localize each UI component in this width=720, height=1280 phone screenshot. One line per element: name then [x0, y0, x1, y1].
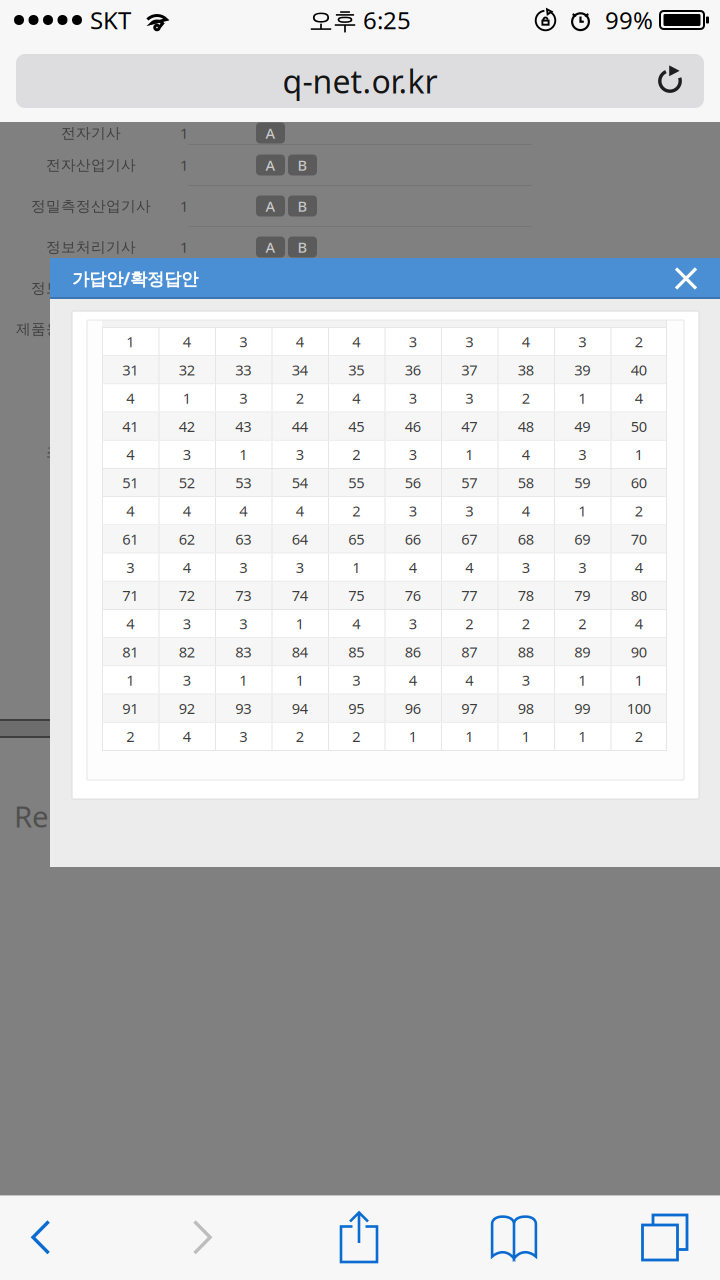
staticText: 1 — [180, 319, 188, 339]
staticText: 3 — [522, 670, 530, 690]
staticText: 2 — [352, 445, 360, 464]
staticText: 32 — [179, 360, 195, 380]
staticText: 2 — [578, 614, 586, 633]
staticText: 2 — [352, 501, 360, 521]
staticText: 95 — [348, 698, 364, 718]
staticText: 4 — [522, 501, 530, 521]
staticText: 2 — [352, 727, 360, 746]
staticText: 93 — [235, 698, 251, 718]
staticText: 40 — [631, 360, 647, 380]
staticText: 42 — [179, 416, 195, 436]
staticText: 4 — [126, 388, 134, 408]
staticText: 4 — [126, 445, 134, 464]
button[interactable]: Back — [0, 1195, 82, 1280]
staticText: 3 — [409, 445, 417, 464]
button[interactable]: Forward — [82, 1195, 323, 1280]
staticText: 4 — [635, 614, 643, 633]
staticText: 72 — [179, 586, 195, 605]
staticText: A — [265, 196, 275, 216]
staticText: 48 — [518, 416, 534, 436]
staticText: 1 — [180, 237, 188, 257]
staticText: 3 — [578, 445, 586, 464]
staticText: 정밀측정산업기사 — [31, 197, 151, 215]
staticText: 3 — [296, 557, 304, 577]
staticText: 34 — [292, 360, 308, 380]
staticText: 79 — [574, 586, 590, 605]
staticText: 47 — [461, 416, 477, 436]
staticText: 1 — [239, 670, 247, 690]
staticText: 1 — [183, 388, 191, 408]
staticText: 90 — [631, 642, 647, 662]
staticText: 4 — [352, 332, 360, 351]
staticText: 67 — [461, 529, 477, 549]
staticText: 3 — [409, 332, 417, 351]
staticText: 52 — [179, 473, 195, 492]
staticText: 3 — [183, 614, 191, 633]
staticText: 55 — [348, 473, 364, 492]
staticText: 4 — [409, 670, 417, 690]
staticText: SKT — [90, 4, 131, 36]
staticText: 1 — [522, 727, 530, 746]
staticText: 3 — [465, 332, 473, 351]
button[interactable]: Bookmarks — [395, 1195, 633, 1280]
staticText: 1 — [180, 278, 188, 298]
staticText: A — [265, 278, 275, 298]
staticText: B — [297, 237, 307, 257]
staticText: 73 — [235, 586, 251, 605]
staticText: 80 — [631, 586, 647, 605]
staticText: 98 — [518, 698, 534, 718]
staticText: 1 — [180, 123, 188, 143]
button[interactable]: Share — [323, 1195, 395, 1280]
staticText: 1 — [578, 670, 586, 690]
staticText: 3 — [296, 445, 304, 464]
staticText: 94 — [292, 698, 308, 718]
staticText: 87 — [461, 642, 477, 662]
staticText: 제품응용모델링기능사 — [16, 320, 166, 338]
staticText: 4 — [409, 557, 417, 577]
staticText: 74 — [292, 586, 308, 605]
staticText: 38 — [518, 360, 534, 380]
staticText: B — [297, 155, 307, 175]
staticText: 1 — [126, 332, 134, 351]
staticText: 2 — [522, 614, 530, 633]
staticText: 1 — [239, 445, 247, 464]
staticText: 4 — [183, 332, 191, 351]
staticText: Resources — [14, 796, 156, 835]
staticText: A — [265, 237, 275, 257]
staticText: 62 — [179, 529, 195, 549]
staticText: 91 — [122, 698, 138, 718]
staticText: 2 — [465, 614, 473, 633]
staticText: 1 — [180, 155, 188, 175]
staticText: 3 — [522, 557, 530, 577]
staticText: 92 — [179, 698, 195, 718]
button[interactable]: Close — [662, 257, 710, 299]
staticText: 36 — [405, 360, 421, 380]
staticText: 45 — [348, 416, 364, 436]
staticText: 41 — [122, 416, 138, 436]
staticText: 1 — [296, 614, 304, 633]
staticText: 4 — [126, 501, 134, 521]
staticText: 4 — [465, 557, 473, 577]
staticText: 31 — [122, 360, 138, 380]
staticText: 1 — [635, 670, 643, 690]
staticText: A — [265, 123, 275, 143]
staticText: 65 — [348, 529, 364, 549]
staticText: 69 — [574, 529, 590, 549]
staticText: 68 — [518, 529, 534, 549]
staticText: 3 — [239, 614, 247, 633]
button[interactable]: Tabs — [633, 1195, 697, 1280]
staticText: 4 — [126, 614, 134, 633]
staticText: 오후 6:25 — [309, 4, 411, 36]
staticText: B — [297, 278, 307, 298]
staticText: 3 — [183, 670, 191, 690]
staticText: 86 — [405, 642, 421, 662]
staticText: 97 — [461, 698, 477, 718]
button[interactable]: Reload — [644, 54, 698, 108]
staticText: 3 — [239, 557, 247, 577]
staticText: 4 — [183, 557, 191, 577]
staticText: 89 — [574, 642, 590, 662]
staticText: 70 — [631, 529, 647, 549]
staticText: 정보처리산업기사 — [31, 279, 151, 297]
staticText: 35 — [348, 360, 364, 380]
staticText: 전자기사 — [61, 124, 121, 142]
